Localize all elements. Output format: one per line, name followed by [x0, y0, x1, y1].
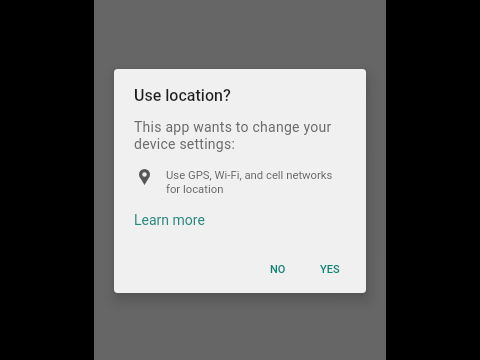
- staticText: This app wants to change your: [134, 119, 332, 135]
- staticText: NO: [270, 263, 286, 276]
- staticText: YES: [320, 263, 340, 276]
- staticText: Learn more: [134, 212, 205, 228]
- staticText: Use GPS, Wi-Fi, and cell networks: [166, 169, 333, 182]
- button[interactable]: Learn more: [125, 204, 217, 228]
- staticText: for location: [166, 183, 224, 196]
- button[interactable]: NO: [253, 251, 303, 288]
- button[interactable]: YES: [305, 251, 355, 288]
- staticText: Use location?: [134, 86, 231, 105]
- staticText: device settings:: [134, 136, 236, 152]
